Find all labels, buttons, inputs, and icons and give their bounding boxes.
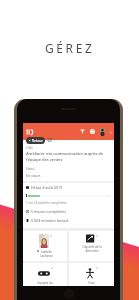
staticText: Améliorer ma communication auprès de <box>26 151 103 156</box>
button[interactable]: Objectifs de la démarche <box>69 231 114 261</box>
button[interactable]: Chart <box>48 138 52 142</box>
staticText: Cible <box>26 146 33 150</box>
button[interactable]: Home <box>26 129 33 135</box>
button[interactable]: Équipes du mandat <box>23 263 67 286</box>
staticText: ? <box>92 129 94 134</box>
button[interactable]: Suivi <box>69 263 114 286</box>
button[interactable]: Profile <box>100 128 105 135</box>
staticText: 5 heures complétées <box>31 209 67 214</box>
staticText: Objectifs de la démarche <box>82 245 102 253</box>
staticText: GÉREZ <box>45 40 95 56</box>
staticText: Retour <box>32 138 43 143</box>
staticText: Statut <box>26 167 35 171</box>
button[interactable]: Filter <box>80 129 85 134</box>
staticText: Suivi <box>88 281 95 285</box>
button[interactable]: Retour <box>26 137 45 144</box>
staticText: Isabelle Lachance <box>40 250 53 258</box>
staticText: Début 4 août 2019 <box>31 185 63 190</box>
button[interactable]: Help <box>90 129 95 134</box>
button[interactable]: Isabelle Lachance <box>23 231 67 261</box>
staticText: l'équipe des ventes <box>26 157 63 162</box>
staticText: En cours <box>26 173 41 178</box>
staticText: 0.00$ montant facturé <box>31 218 69 223</box>
staticText: Équipes du mandat <box>37 281 53 286</box>
staticText: 1 sur 14 activités complétées <box>26 201 67 205</box>
